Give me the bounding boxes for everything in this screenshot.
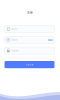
button[interactable]: 获取验证码: [47, 39, 52, 41]
staticText: 立即注册: [25, 63, 33, 66]
button[interactable]: 立即注册: [4, 61, 54, 68]
staticText: 注册: [27, 10, 33, 14]
staticText: 获取验证码: [47, 39, 52, 41]
staticText: 请输入验证码: [11, 39, 17, 41]
staticText: 请设置登录密码: [11, 50, 18, 51]
staticText: 请输入手机号: [11, 28, 17, 30]
